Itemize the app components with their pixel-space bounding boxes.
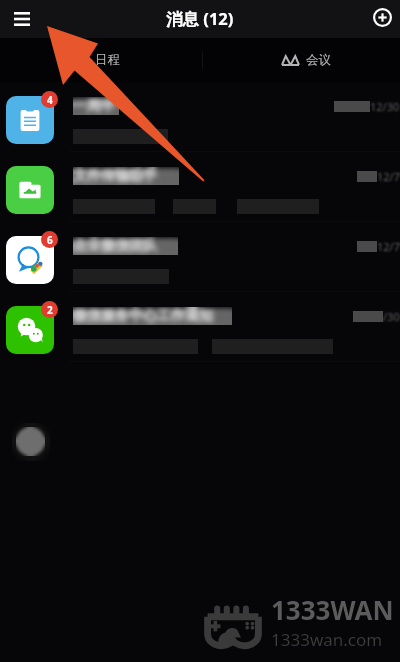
staticText: 4: [47, 93, 53, 107]
staticText: 1333WAN: [271, 592, 394, 627]
staticText: 消息 (12): [166, 7, 234, 30]
button[interactable]: 会议: [281, 38, 331, 82]
staticText: 1333wan.com: [271, 628, 383, 651]
button[interactable]: 4: [0, 82, 400, 152]
button[interactable]: Menu: [5, 2, 39, 36]
button[interactable]: Add: [365, 0, 399, 34]
staticText: 企业微信团队: [73, 237, 157, 255]
staticText: 文件传输助手: [73, 167, 157, 185]
staticText: 微信服务中心工作通知: [73, 307, 213, 325]
staticText: 2: [47, 303, 53, 317]
button[interactable]: Floating assistant ball: [5, 416, 56, 467]
staticText: 一周半: [73, 97, 115, 115]
button[interactable]: 2: [0, 292, 400, 362]
staticText: 日程: [95, 52, 120, 68]
staticText: 12/7: [377, 169, 400, 184]
staticText: /30: [383, 309, 400, 324]
staticText: 12/30: [370, 99, 400, 114]
staticText: 6: [47, 233, 53, 247]
staticText: 会议: [306, 52, 331, 68]
button[interactable]: 6: [0, 222, 400, 292]
staticText: 12/7: [377, 239, 400, 254]
button[interactable]: 日程: [74, 38, 120, 82]
button[interactable]: 文件传输助手: [0, 152, 400, 222]
